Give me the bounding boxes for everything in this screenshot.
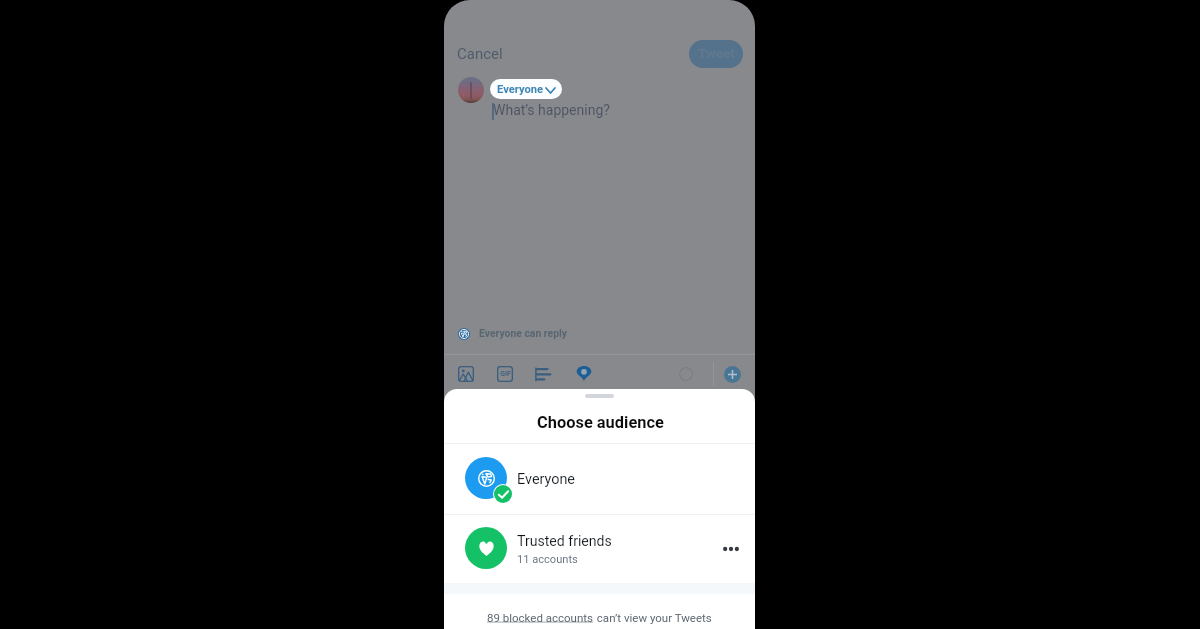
button[interactable]: Tweet <box>689 40 743 68</box>
button[interactable]: Location <box>569 359 599 389</box>
staticText: Everyone <box>517 471 575 488</box>
button[interactable]: Cancel <box>455 44 505 68</box>
staticText: Tweet <box>698 46 735 62</box>
staticText: Everyone can reply <box>479 327 567 339</box>
staticText: Cancel <box>457 45 503 63</box>
button[interactable]: Everyone can reply <box>458 328 570 342</box>
button[interactable]: Poll <box>528 359 558 389</box>
staticText: Trusted friends <box>517 533 612 550</box>
button[interactable]: 89 blocked accounts <box>487 611 594 624</box>
staticText: 11 accounts <box>517 553 578 566</box>
staticText: What’s happening? <box>493 102 610 118</box>
button[interactable]: GIF <box>490 359 520 389</box>
staticText: can’t view your Tweets <box>594 611 712 624</box>
staticText: Choose audience <box>537 413 664 432</box>
button[interactable]: Add tweet <box>717 359 747 389</box>
button[interactable]: Trusted friends <box>444 515 755 583</box>
button[interactable]: Everyone <box>444 444 755 514</box>
staticText: Everyone <box>497 83 544 96</box>
button[interactable]: Everyone <box>490 79 562 99</box>
staticText: GIF <box>500 370 511 378</box>
button[interactable]: More options <box>716 534 746 564</box>
button[interactable]: Media <box>451 359 481 389</box>
